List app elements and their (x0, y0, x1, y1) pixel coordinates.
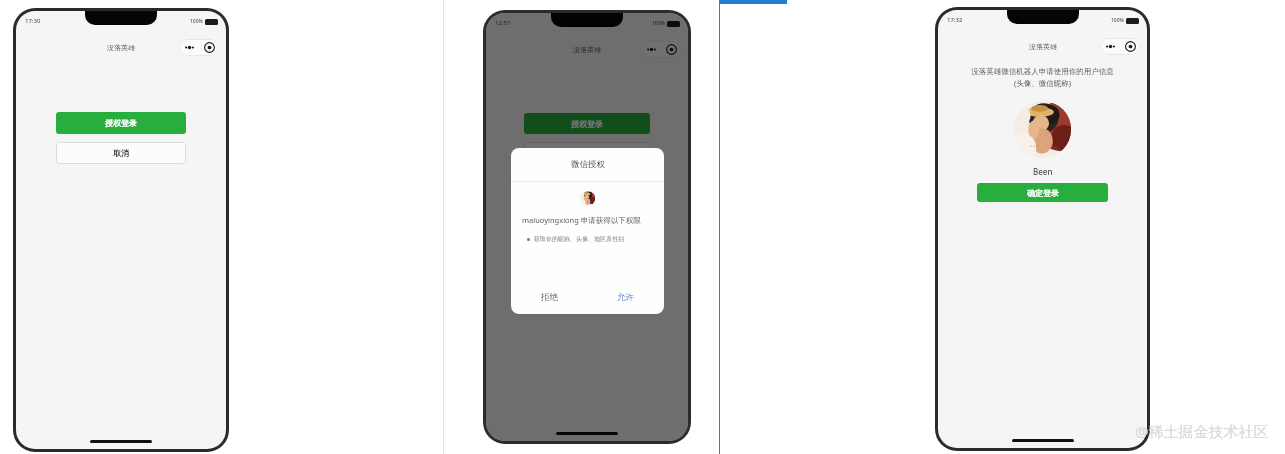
button[interactable]: More options (641, 41, 661, 58)
staticText: maluoyingxiong 申请获得以下权限 (522, 215, 653, 225)
staticText: 确定登录 (1027, 188, 1059, 198)
staticText: 100% (190, 18, 203, 25)
button[interactable] (486, 13, 688, 441)
staticText: 拒绝 (541, 292, 558, 303)
button[interactable]: Close mini program (661, 41, 681, 58)
staticText: 12:51 (495, 19, 511, 27)
staticText: 获取你的昵称、头像、地区及性别 (534, 235, 624, 243)
button[interactable] (524, 142, 650, 163)
staticText: 17:30 (25, 17, 41, 25)
staticText: 取消 (113, 148, 129, 158)
staticText: 100% (1111, 17, 1124, 24)
button[interactable]: 授权登录 (56, 112, 186, 134)
staticText: 允许 (617, 292, 634, 303)
button[interactable]: 授权登录 (524, 113, 650, 134)
staticText: 没落英雄 (107, 43, 135, 52)
staticText: 17:32 (947, 16, 963, 24)
button[interactable]: More options (179, 39, 199, 56)
button[interactable]: Close mini program (199, 39, 219, 56)
button[interactable]: 确定登录 (977, 183, 1108, 202)
button[interactable]: Close mini program (1120, 38, 1140, 55)
button[interactable]: More options (1100, 38, 1120, 55)
staticText: 没落英雄 (573, 45, 601, 54)
staticText: 授权登录 (571, 119, 603, 129)
staticText: 没落英雄 (1029, 42, 1057, 51)
button[interactable]: 取消 (56, 142, 186, 164)
button[interactable]: 拒绝 (511, 280, 587, 314)
button[interactable]: 允许 (587, 280, 664, 314)
staticText: 没落英雄微信机器人申请使用你的用户信息 (头像、微信昵称) (945, 67, 1140, 89)
staticText: 授权登录 (105, 118, 137, 128)
staticText: @稀土掘金技术社区 (1135, 421, 1269, 441)
staticText: 微信授权 (571, 159, 605, 170)
staticText: Been (1033, 166, 1053, 177)
staticText: 100% (652, 20, 665, 27)
